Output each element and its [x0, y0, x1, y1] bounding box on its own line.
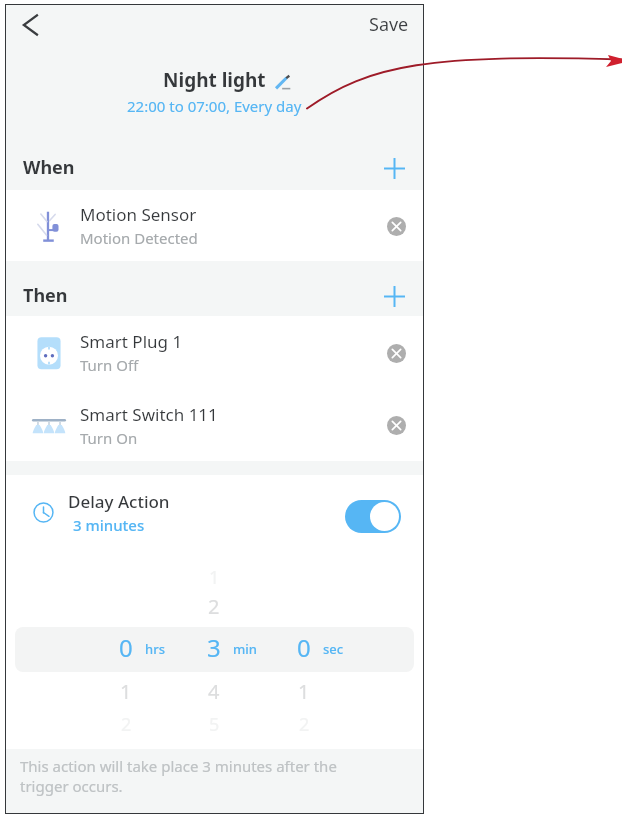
staticText: Save [369, 12, 409, 37]
staticText: Night light [163, 67, 266, 93]
staticText: 1 [120, 678, 132, 705]
staticText: 1 [298, 678, 310, 705]
staticText: This action will take place 3 minutes af… [20, 756, 337, 796]
staticText: Motion Sensor [80, 203, 197, 226]
button[interactable]: 0 [111, 547, 191, 747]
button[interactable]: Edit name [274, 74, 291, 91]
staticText: Motion Detected [80, 228, 198, 248]
button[interactable]: Remove Smart Plug 1 [381, 338, 411, 368]
staticText: Smart Switch 111 [80, 403, 218, 426]
staticText: 5 [209, 712, 220, 737]
staticText: sec [323, 640, 344, 658]
button[interactable]: Smart Plug 1 [5, 316, 424, 389]
staticText: 2 [208, 593, 220, 620]
staticText: 0 [297, 631, 311, 664]
button[interactable]: Remove Smart Switch 111 [381, 410, 411, 440]
staticText: 0 [119, 631, 133, 664]
button[interactable]: Delay Action [5, 475, 424, 547]
staticText: 2 [299, 712, 310, 737]
staticText: 1 [209, 565, 220, 590]
button[interactable]: Motion Sensor [5, 190, 424, 261]
staticText: 4 [208, 678, 220, 705]
button[interactable]: Smart Switch 111 [5, 389, 424, 461]
staticText: Smart Plug 1 [80, 330, 183, 353]
staticText: Turn On [80, 428, 138, 448]
button[interactable]: Delay action toggle [345, 500, 401, 533]
staticText: hrs [145, 640, 165, 658]
staticText: 22:00 to 07:00, Every day [127, 96, 302, 116]
button[interactable]: 0 [289, 547, 369, 747]
staticText: 2 [121, 712, 132, 737]
staticText: 3 [207, 631, 221, 664]
button[interactable]: Save [363, 6, 415, 43]
staticText: Turn Off [80, 355, 139, 375]
button[interactable]: Add When [376, 150, 412, 186]
staticText: When [23, 155, 75, 180]
staticText: Then [23, 283, 68, 308]
staticText: Delay Action [68, 490, 170, 513]
button[interactable]: Back [11, 5, 51, 45]
staticText: 3 minutes [73, 515, 145, 535]
button[interactable]: Add Then [376, 278, 412, 314]
button[interactable]: Remove Motion Sensor [381, 211, 411, 241]
staticText: min [233, 640, 257, 658]
button[interactable]: 1 [199, 547, 279, 747]
